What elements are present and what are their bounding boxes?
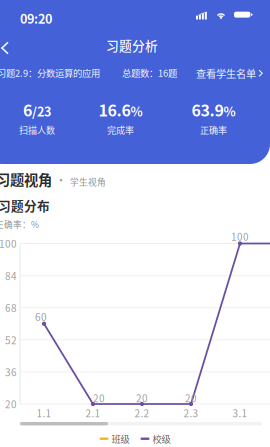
staticText: 完成率 bbox=[107, 123, 134, 136]
staticText: 20 bbox=[93, 391, 105, 405]
staticText: 2.3 bbox=[183, 406, 198, 420]
staticText: 09:20 bbox=[20, 9, 52, 27]
staticText: 100 bbox=[0, 236, 17, 251]
staticText: 班级 bbox=[111, 432, 129, 445]
button[interactable]: 学生视角 bbox=[70, 175, 106, 188]
staticText: 60 bbox=[35, 309, 47, 324]
staticText: 学生视角 bbox=[70, 175, 106, 188]
staticText: 习题视角 bbox=[0, 169, 52, 190]
staticText: 2.2 bbox=[134, 406, 149, 420]
staticText: 20 bbox=[136, 391, 148, 405]
staticText: 1.1 bbox=[36, 406, 51, 420]
staticText: 36 bbox=[5, 365, 17, 379]
staticText: 校级 bbox=[152, 432, 170, 445]
staticText: 20 bbox=[5, 397, 17, 411]
staticText: 6 bbox=[23, 98, 32, 121]
staticText: 63.9 bbox=[191, 98, 223, 121]
staticText: 84 bbox=[5, 268, 17, 283]
staticText: 3.1 bbox=[232, 406, 247, 420]
staticText: 20 bbox=[185, 391, 197, 405]
staticText: 100 bbox=[231, 229, 249, 244]
staticText: · bbox=[55, 172, 67, 189]
staticText: 2.1 bbox=[85, 406, 100, 420]
staticText: 查看学生名单 bbox=[196, 66, 256, 81]
staticText: 习题2.9：分数运算的应用 bbox=[0, 66, 100, 79]
staticText: % bbox=[223, 102, 235, 120]
staticText: 习题分布 bbox=[0, 196, 50, 214]
staticText: 16.6 bbox=[98, 98, 130, 121]
staticText: 习题分析 bbox=[106, 36, 158, 54]
staticText: 68 bbox=[5, 300, 17, 315]
button[interactable]: 习题视角 bbox=[0, 169, 52, 190]
staticText: /23 bbox=[32, 102, 51, 120]
staticText: 正确率 bbox=[200, 123, 227, 136]
staticText: 总题数：16题 bbox=[122, 66, 177, 79]
staticText: 52 bbox=[5, 333, 17, 347]
staticText: 正确率：% bbox=[0, 218, 39, 230]
staticText: 扫描人数 bbox=[19, 123, 55, 136]
staticText: % bbox=[130, 102, 142, 120]
button[interactable]: Back bbox=[0, 34, 17, 62]
button[interactable]: 查看学生名单 bbox=[196, 66, 263, 81]
